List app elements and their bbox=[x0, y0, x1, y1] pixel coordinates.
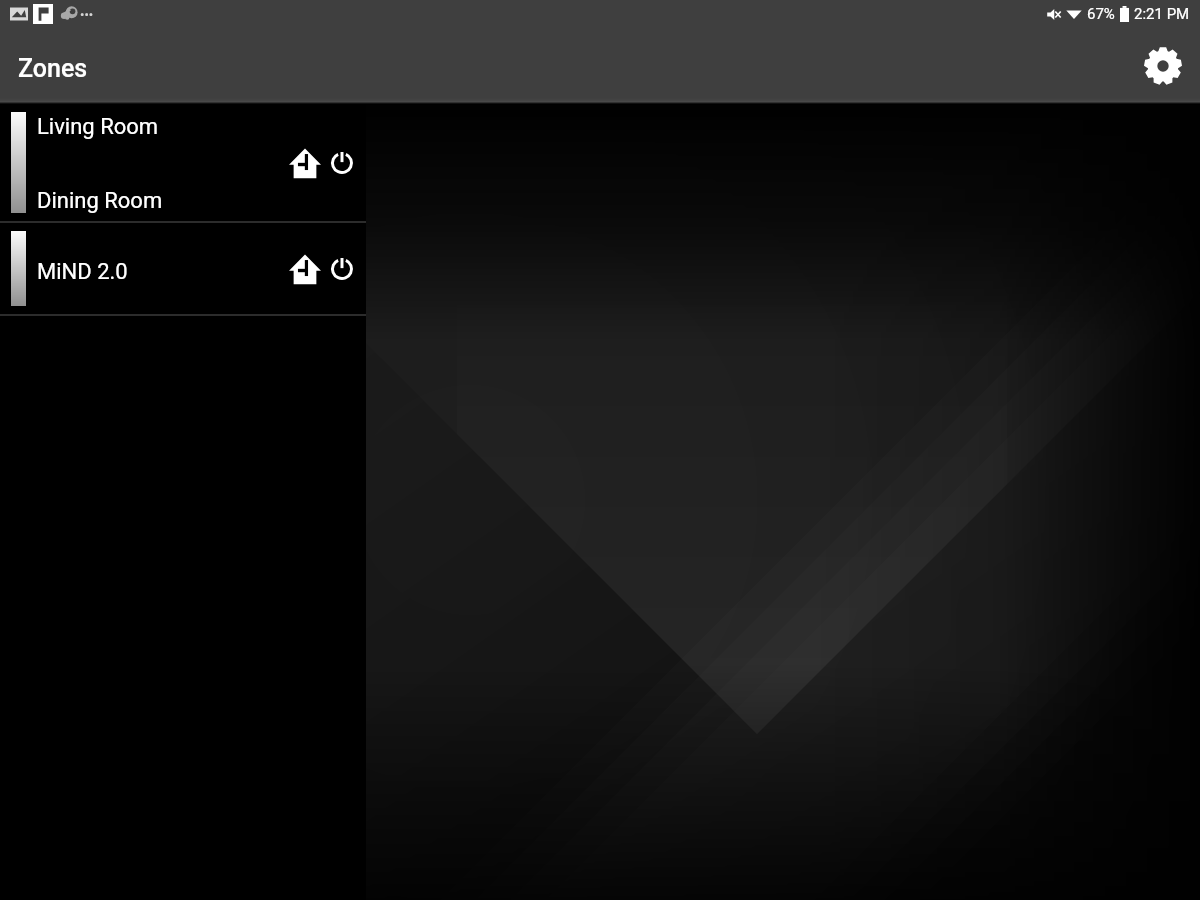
button[interactable]: Power bbox=[326, 253, 358, 285]
button[interactable]: MiND 2.0 bbox=[0, 223, 366, 314]
button[interactable]: Settings bbox=[1141, 44, 1185, 88]
button[interactable]: Go to zone home bbox=[287, 145, 323, 181]
button[interactable]: Power bbox=[326, 147, 358, 179]
staticText: 2:21 PM bbox=[1134, 5, 1190, 23]
staticText: 67% bbox=[1087, 5, 1115, 23]
staticText: MiND 2.0 bbox=[37, 259, 128, 285]
staticText: Dining Room bbox=[37, 188, 163, 214]
staticText: Zones bbox=[18, 54, 88, 83]
button[interactable]: Go to zone home bbox=[287, 251, 323, 287]
button[interactable]: Living Room bbox=[0, 104, 366, 221]
staticText: Living Room bbox=[37, 114, 159, 140]
staticText: ••• bbox=[80, 7, 94, 22]
